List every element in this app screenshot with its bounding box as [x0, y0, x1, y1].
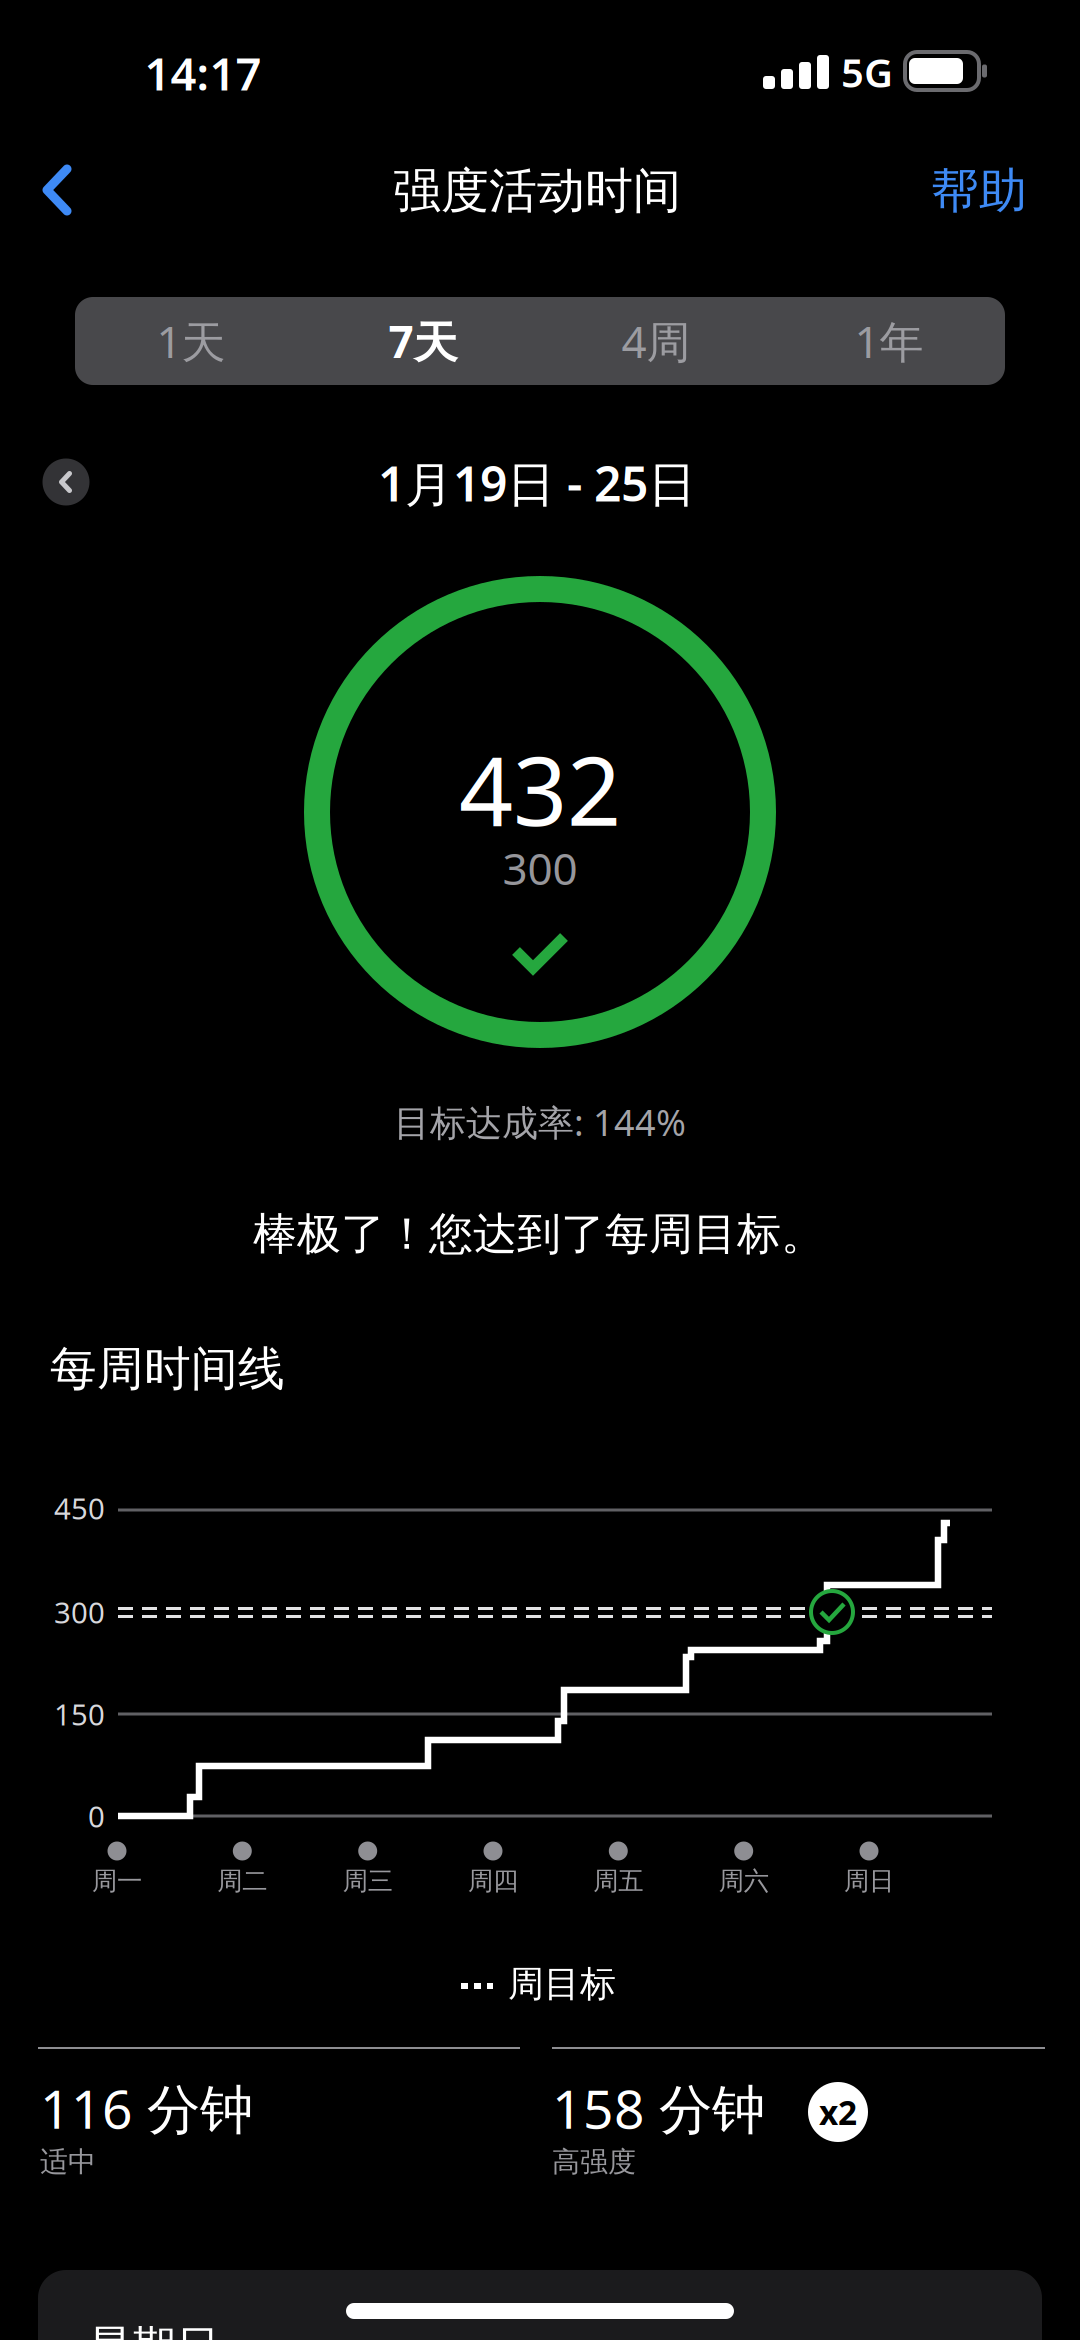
- staticText: 周一: [92, 1865, 142, 1896]
- staticText: 周三: [343, 1865, 393, 1896]
- staticText: 300: [54, 1592, 105, 1631]
- button[interactable]: 上一周: [42, 458, 89, 505]
- button[interactable]: 帮助: [931, 161, 1027, 220]
- staticText: 14:17: [144, 43, 261, 103]
- staticText: 适中: [40, 2145, 96, 2179]
- staticText: 1天: [156, 312, 225, 370]
- button[interactable]: 1年: [774, 297, 1004, 385]
- staticText: 目标达成率: 144%: [394, 1098, 686, 1146]
- staticText: 7天: [388, 312, 457, 370]
- staticText: 周六: [719, 1865, 769, 1896]
- staticText: 450: [54, 1488, 105, 1527]
- staticText: 周二: [217, 1865, 267, 1896]
- staticText: 周目标: [508, 1962, 616, 2006]
- staticText: 1月19日 - 25日: [378, 451, 696, 515]
- staticText: x2: [819, 2090, 857, 2134]
- button[interactable]: 返回: [42, 164, 72, 216]
- staticText: 116 分钟: [40, 2073, 253, 2143]
- button[interactable]: 4周: [541, 297, 771, 385]
- staticText: 星期日: [88, 2320, 220, 2340]
- staticText: 帮助: [931, 161, 1027, 220]
- button[interactable]: 星期日: [88, 2319, 1044, 2340]
- staticText: 每周时间线: [50, 1340, 285, 1398]
- staticText: 150: [54, 1694, 105, 1733]
- staticText: 周四: [468, 1865, 518, 1896]
- staticText: 强度活动时间: [393, 161, 681, 220]
- staticText: 300: [502, 839, 577, 897]
- staticText: 周五: [593, 1865, 643, 1896]
- staticText: 周日: [844, 1865, 894, 1896]
- staticText: 高强度: [552, 2145, 636, 2179]
- button[interactable]: 1天: [76, 297, 306, 385]
- staticText: 1年: [854, 312, 923, 370]
- staticText: 5G: [841, 45, 893, 98]
- staticText: 158 分钟: [552, 2073, 765, 2143]
- staticText: 4周: [621, 312, 690, 370]
- staticText: 0: [88, 1796, 105, 1835]
- button[interactable]: 7天: [308, 297, 538, 385]
- staticText: 棒极了！您达到了每周目标。: [253, 1207, 825, 1261]
- staticText: 432: [459, 726, 621, 852]
